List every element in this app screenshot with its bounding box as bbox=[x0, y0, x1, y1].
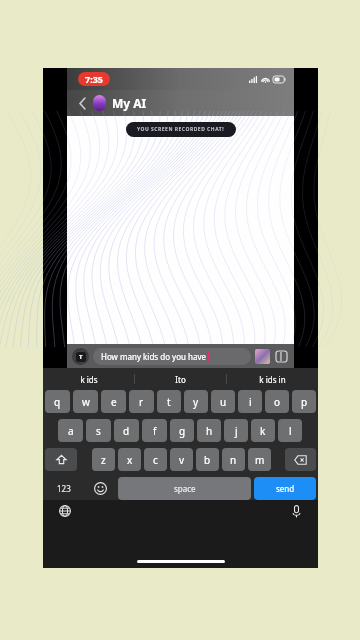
staticText: e bbox=[111, 395, 117, 409]
staticText: k ids bbox=[80, 374, 98, 385]
staticText: n bbox=[230, 453, 237, 467]
staticText: z bbox=[101, 453, 106, 467]
staticText: i bbox=[249, 395, 252, 409]
staticText: t bbox=[167, 395, 171, 409]
staticText: send bbox=[276, 483, 295, 494]
staticText: w bbox=[82, 395, 90, 409]
staticText: a bbox=[68, 424, 74, 438]
staticText: y bbox=[193, 395, 199, 409]
staticText: space bbox=[174, 483, 196, 494]
button[interactable]: More options bbox=[274, 349, 289, 364]
staticText: How many kids do you have bbox=[101, 351, 207, 362]
staticText: r bbox=[139, 395, 144, 409]
button[interactable]: Backspace bbox=[285, 448, 316, 471]
staticText: My AI bbox=[112, 95, 147, 111]
button[interactable]: j bbox=[224, 419, 248, 442]
button[interactable]: i bbox=[238, 390, 262, 413]
button[interactable]: u bbox=[211, 390, 235, 413]
button[interactable]: f bbox=[142, 419, 167, 442]
button[interactable]: o bbox=[265, 390, 289, 413]
button[interactable]: b bbox=[196, 448, 219, 471]
button[interactable]: Voice input bbox=[288, 503, 304, 519]
staticText: s bbox=[96, 424, 101, 438]
staticText: c bbox=[153, 453, 158, 467]
button[interactable]: y bbox=[184, 390, 208, 413]
button[interactable]: t bbox=[157, 390, 181, 413]
button[interactable]: My AI avatar bbox=[93, 95, 106, 111]
button[interactable]: Camera bbox=[72, 348, 89, 365]
staticText: f bbox=[153, 424, 157, 438]
button[interactable]: x bbox=[118, 448, 141, 471]
button[interactable]: v bbox=[170, 448, 193, 471]
button[interactable]: Shift bbox=[45, 448, 77, 471]
button[interactable]: YOU SCREEN RECORDED CHAT! bbox=[137, 126, 225, 133]
staticText: u bbox=[220, 395, 227, 409]
button[interactable]: m bbox=[248, 448, 271, 471]
button[interactable]: Ito bbox=[135, 368, 226, 390]
staticText: 123 bbox=[57, 483, 71, 494]
button[interactable]: Change language bbox=[57, 503, 73, 519]
button[interactable]: g bbox=[170, 419, 194, 442]
button[interactable]: q bbox=[45, 390, 70, 413]
staticText: g bbox=[179, 424, 186, 438]
staticText: h bbox=[206, 424, 213, 438]
staticText: d bbox=[123, 424, 130, 438]
button[interactable]: z bbox=[92, 448, 115, 471]
button[interactable]: k ids bbox=[43, 368, 134, 390]
staticText: 7:35 bbox=[85, 73, 103, 85]
staticText: b bbox=[204, 453, 211, 467]
staticText: p bbox=[301, 395, 308, 409]
button[interactable]: h bbox=[197, 419, 221, 442]
staticText: v bbox=[179, 453, 185, 467]
button[interactable]: c bbox=[144, 448, 167, 471]
staticText: k bbox=[260, 424, 266, 438]
button[interactable]: k ids in bbox=[227, 368, 318, 390]
button[interactable]: w bbox=[73, 390, 98, 413]
staticText: T bbox=[79, 353, 83, 361]
button[interactable]: r bbox=[129, 390, 154, 413]
button[interactable]: l bbox=[278, 419, 302, 442]
staticText: j bbox=[235, 424, 238, 438]
staticText: o bbox=[274, 395, 281, 409]
staticText: k ids in bbox=[259, 374, 286, 385]
button[interactable]: k bbox=[251, 419, 275, 442]
staticText: l bbox=[289, 424, 292, 438]
button[interactable]: n bbox=[222, 448, 245, 471]
button[interactable]: p bbox=[292, 390, 316, 413]
staticText: m bbox=[255, 453, 265, 467]
staticText: q bbox=[54, 395, 61, 409]
button[interactable]: send bbox=[254, 477, 316, 500]
button[interactable]: Back bbox=[74, 95, 90, 111]
staticText: YOU SCREEN RECORDED CHAT! bbox=[137, 126, 225, 133]
staticText: x bbox=[127, 453, 133, 467]
button[interactable]: Emoji bbox=[86, 477, 115, 500]
button[interactable]: 123 bbox=[45, 477, 83, 500]
button[interactable]: e bbox=[101, 390, 126, 413]
button[interactable]: d bbox=[114, 419, 139, 442]
button[interactable]: 7:35 bbox=[85, 73, 103, 85]
staticText: Ito bbox=[175, 374, 186, 385]
button[interactable]: Stickers bbox=[255, 349, 270, 364]
button[interactable]: space bbox=[118, 477, 251, 500]
button[interactable]: How many kids do you have bbox=[101, 348, 243, 365]
button[interactable]: a bbox=[58, 419, 83, 442]
button[interactable]: s bbox=[86, 419, 111, 442]
